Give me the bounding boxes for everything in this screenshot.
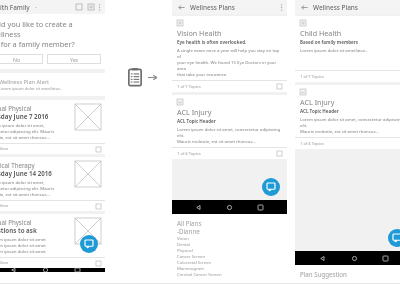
button[interactable]: hysical Therapy (0, 157, 105, 211)
staticText: Lorem ipsum dolor sit amet Lorem ipsum d… (0, 236, 46, 254)
staticText: 1 of 7 Topics (177, 84, 201, 90)
staticText: ead More (0, 203, 9, 209)
button[interactable]: Home (350, 254, 359, 263)
button[interactable]: Yes (47, 54, 101, 64)
staticText: Child Health (300, 28, 342, 38)
button[interactable]: nnual Physical (0, 214, 105, 268)
staticText: Lorem ipsum dolor sit amet, consectetur … (177, 126, 282, 144)
staticText: Dental (177, 242, 190, 248)
staticText: orem ipsum dolor sit amet, nsectetur adi… (0, 179, 55, 197)
button[interactable]: Recents (381, 254, 390, 263)
staticText: Wellness Plan Alert (0, 78, 49, 86)
staticText: Vision Health (177, 28, 222, 38)
button[interactable]: Back (194, 203, 203, 212)
button[interactable]: No (0, 54, 43, 64)
staticText: Vision (177, 236, 189, 242)
staticText: uesday June 14 2016 (0, 169, 52, 177)
button[interactable]: Back (299, 2, 309, 12)
staticText: nnual Physical (0, 218, 32, 226)
staticText: ith Family (0, 3, 30, 12)
button[interactable]: Delete (75, 3, 83, 11)
staticText: Wellness Plans (190, 3, 235, 12)
staticText: ACL Topic Header (177, 118, 216, 124)
other: Wellness plan (128, 68, 142, 86)
staticText: ead More (0, 146, 9, 152)
staticText: Cervical Cancer Screen (177, 272, 222, 278)
staticText: Mammogram (177, 266, 204, 272)
staticText: uestions to ask (0, 226, 37, 234)
staticText: ead More (0, 260, 9, 266)
staticText: A single exam once a year will help you … (177, 47, 282, 77)
staticText: hysical Therapy (0, 161, 35, 169)
button[interactable]: nnual Physical (0, 100, 105, 154)
staticText: No (13, 56, 21, 63)
staticText: Cancer Screen (177, 254, 206, 260)
button[interactable]: Recents (256, 203, 265, 212)
button[interactable]: Wellness Plan Alert (0, 73, 105, 96)
button[interactable]: Back (9, 268, 18, 272)
staticText: Colorectal Screen (177, 260, 212, 266)
button[interactable]: Chat (80, 235, 98, 253)
button[interactable]: ACL Injury (295, 85, 400, 149)
button[interactable]: Back (176, 2, 186, 12)
staticText: Lorem ipsum dolor sit amet!atur... (300, 47, 369, 53)
staticText: Based on family members (300, 39, 359, 45)
staticText: ACL Topic Header (300, 108, 339, 114)
staticText: uesday June 7 2016 (0, 112, 49, 120)
button[interactable]: Back (318, 254, 327, 263)
staticText: 1 of 4 Topics (177, 151, 201, 157)
button[interactable]: Vision Health (172, 16, 287, 92)
button[interactable]: Chat (388, 229, 400, 247)
staticText: Yes (70, 56, 79, 63)
staticText: 1 of 7 Topics (300, 74, 324, 80)
other: More options (280, 3, 283, 12)
staticText: All Plans (177, 219, 202, 227)
staticText: - (35, 3, 37, 11)
staticText: -Dianne (177, 227, 200, 235)
button[interactable]: Recents (73, 268, 82, 272)
staticText: Eye health is often overlooked. (177, 39, 247, 45)
staticText: 1 of 4 Topics (300, 141, 324, 147)
button[interactable]: ACL Injury (172, 95, 287, 159)
button[interactable]: Home (225, 203, 234, 212)
staticText: ould you like to create a Wellness an fo… (0, 19, 101, 49)
staticText: Wellness Plans (313, 3, 358, 12)
button[interactable]: Child Health (295, 16, 400, 82)
staticText: Plan Suggestion (300, 270, 347, 278)
staticText: orem ipsum dolor sit amet, nsectetur adi… (0, 122, 55, 140)
staticText: Lorem ipsum dolor sit amet, consectetur … (300, 116, 400, 134)
button[interactable]: Camera (87, 3, 95, 11)
staticText: ACL Injury (177, 107, 212, 117)
staticText: Lorem ipsum dolor sit amet!atur... (0, 86, 63, 91)
button[interactable]: Home (41, 268, 50, 272)
staticText: nnual Physical (0, 104, 32, 112)
staticText: ACL Injury (300, 97, 335, 107)
button[interactable]: Chat (262, 178, 280, 196)
other: More options (98, 3, 101, 12)
staticText: Physical (177, 248, 193, 254)
